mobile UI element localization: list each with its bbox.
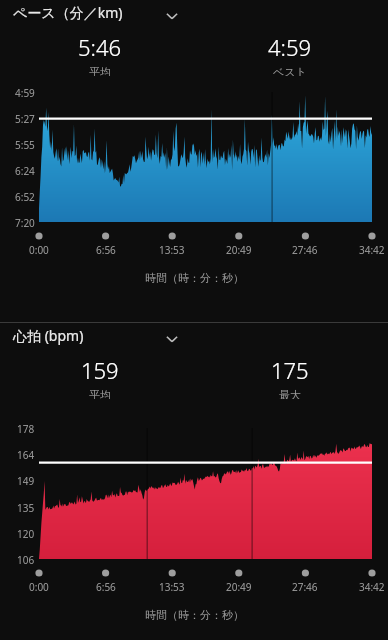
staticText: 13:53 [159, 580, 185, 594]
staticText: 159 [81, 355, 119, 385]
staticText: ベスト [273, 65, 307, 76]
staticText: 6:52 [15, 190, 35, 204]
staticText: 心拍 (bpm) [13, 326, 84, 345]
staticText: 4:59 [15, 86, 35, 100]
staticText: 5:27 [15, 112, 35, 126]
staticText: 27:46 [292, 580, 318, 594]
staticText: 0:00 [29, 580, 49, 594]
staticText: 6:56 [96, 243, 116, 257]
staticText: 164 [17, 448, 35, 462]
staticText: 20:49 [226, 243, 252, 257]
staticText: 5:46 [78, 32, 122, 62]
staticText: 135 [17, 501, 35, 515]
staticText: 175 [271, 355, 309, 385]
staticText: 20:49 [226, 580, 252, 594]
staticText: 6:56 [96, 580, 116, 594]
staticText: 34:42 [359, 243, 385, 257]
staticText: 4:59 [268, 32, 312, 62]
staticText: 7:20 [15, 216, 35, 230]
staticText: 120 [17, 527, 35, 541]
staticText: 149 [17, 474, 35, 488]
staticText: 0:00 [29, 243, 49, 257]
staticText: 時間（時：分：秒） [145, 608, 244, 622]
staticText: 平均 [89, 65, 111, 76]
other: Expand [164, 8, 180, 24]
staticText: 6:24 [15, 164, 35, 178]
staticText: 5:55 [15, 138, 35, 152]
button[interactable]: 心拍 (bpm) [0, 323, 388, 349]
staticText: ペース（分／km) [13, 3, 123, 22]
button[interactable]: ペース（分／km) [0, 0, 388, 26]
staticText: 時間（時：分：秒） [145, 271, 244, 285]
staticText: 34:42 [359, 580, 385, 594]
staticText: 13:53 [159, 243, 185, 257]
staticText: 27:46 [292, 243, 318, 257]
other: Expand [164, 331, 180, 347]
staticText: 106 [17, 553, 35, 567]
staticText: 178 [17, 422, 35, 436]
staticText: 最大 [279, 388, 301, 399]
staticText: 平均 [89, 388, 111, 399]
